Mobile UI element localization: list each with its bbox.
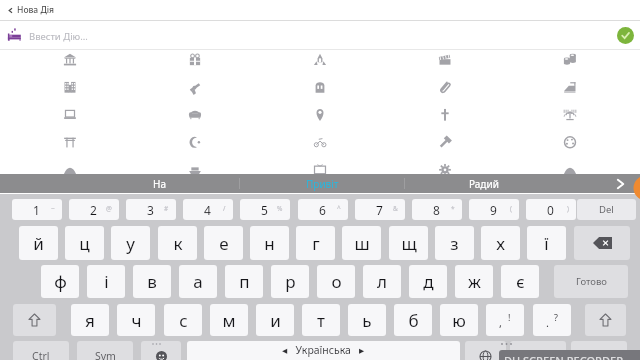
button[interactable]: . — [533, 304, 571, 336]
button[interactable]: н — [250, 226, 289, 260]
button[interactable]: 5 — [240, 199, 290, 220]
button[interactable]: п — [225, 265, 263, 298]
staticText: / — [223, 204, 226, 213]
staticText: ш — [354, 232, 370, 255]
button[interactable]: ж — [455, 265, 493, 298]
staticText: є — [516, 270, 525, 293]
button[interactable] — [571, 341, 627, 360]
staticText: ~ — [51, 204, 55, 213]
staticText: р — [285, 270, 296, 293]
staticText: в — [147, 270, 157, 293]
staticText: % — [277, 204, 283, 213]
button[interactable]: Backspace — [574, 226, 630, 260]
button[interactable]: ї — [527, 226, 566, 260]
button[interactable]: ◂ Українська ▸ — [187, 341, 460, 360]
button[interactable]: л — [363, 265, 401, 298]
button[interactable]: я — [71, 304, 109, 336]
button[interactable]: Shift — [13, 304, 56, 336]
button[interactable]: с — [164, 304, 202, 336]
staticText: 2 — [90, 202, 97, 218]
staticText: ж — [468, 270, 481, 293]
staticText: я — [85, 309, 95, 332]
button[interactable]: д — [409, 265, 447, 298]
button[interactable]: Change language — [465, 341, 506, 360]
button[interactable]: ш — [342, 226, 381, 260]
staticText: На — [153, 177, 166, 191]
staticText: н — [264, 232, 275, 255]
staticText: Del — [599, 203, 614, 216]
staticText: * — [451, 204, 455, 213]
button[interactable]: ч — [117, 304, 155, 336]
staticText: ) — [567, 204, 569, 213]
button[interactable]: Backspace — [574, 226, 630, 260]
button[interactable]: 4 — [183, 199, 233, 220]
button[interactable]: Del — [577, 199, 636, 220]
button[interactable]: б — [394, 304, 432, 336]
button[interactable]: ц — [65, 226, 104, 260]
button[interactable]: р — [271, 265, 309, 298]
button[interactable]: 1 — [12, 199, 62, 220]
button[interactable]: Emoji — [141, 341, 181, 360]
button[interactable]: м — [210, 304, 248, 336]
button[interactable]: 2 — [69, 199, 119, 220]
button[interactable]: щ — [389, 226, 428, 260]
button[interactable]: Shift — [585, 304, 626, 336]
staticText: ! — [508, 311, 511, 323]
button[interactable]: Sym — [77, 341, 133, 360]
button[interactable]: і — [87, 265, 125, 298]
button[interactable]: е — [204, 226, 243, 260]
button[interactable]: Shift — [13, 304, 56, 336]
staticText: 7 — [376, 202, 383, 218]
button[interactable]: о — [317, 265, 355, 298]
button[interactable]: з — [435, 226, 474, 260]
button[interactable]: Нова Дія — [0, 0, 640, 20]
staticText: ц — [79, 232, 90, 255]
staticText: Привіт — [306, 177, 339, 191]
button[interactable]: к — [158, 226, 197, 260]
staticText: о — [331, 270, 342, 293]
staticText: т — [317, 309, 325, 332]
button[interactable]: г — [296, 226, 335, 260]
staticText: і — [104, 270, 109, 293]
staticText: Ввести Дію... — [29, 30, 88, 43]
button[interactable]: 7 — [355, 199, 405, 220]
button[interactable]: и — [256, 304, 294, 336]
staticText: м — [222, 309, 236, 332]
button[interactable]: а — [179, 265, 217, 298]
button[interactable]: ю — [440, 304, 478, 336]
button[interactable]: є — [501, 265, 539, 298]
button[interactable]: 6 — [298, 199, 348, 220]
button[interactable]: ф — [41, 265, 79, 298]
button[interactable]: 8 — [412, 199, 462, 220]
button[interactable]: Change language — [465, 341, 506, 360]
staticText: к — [173, 232, 183, 255]
staticText: б — [408, 309, 419, 332]
staticText: Готово — [576, 275, 607, 288]
button[interactable]: й — [19, 226, 58, 260]
button[interactable]: More suggestions — [604, 174, 636, 193]
staticText: 3 — [147, 202, 154, 218]
staticText: х — [496, 232, 505, 255]
staticText: 8 — [433, 202, 440, 218]
button[interactable]: х — [481, 226, 520, 260]
button[interactable] — [510, 341, 566, 360]
button[interactable]: Готово — [554, 265, 628, 298]
staticText: . — [546, 315, 549, 330]
button[interactable]: На — [80, 174, 239, 193]
button[interactable]: Привіт — [240, 174, 404, 193]
button[interactable]: Shift — [585, 304, 626, 336]
staticText: # — [164, 204, 169, 213]
button[interactable]: т — [302, 304, 340, 336]
button[interactable]: Радий — [405, 174, 562, 193]
button[interactable]: Emoji — [141, 341, 181, 360]
button[interactable]: в — [133, 265, 171, 298]
button[interactable]: ь — [348, 304, 386, 336]
button[interactable]: 9 — [469, 199, 519, 220]
button[interactable]: , — [486, 304, 524, 336]
button[interactable]: 3 — [126, 199, 176, 220]
button[interactable]: у — [111, 226, 150, 260]
button[interactable]: 0 — [526, 199, 576, 220]
button[interactable]: Confirm — [617, 27, 634, 44]
staticText: ? — [554, 311, 558, 323]
button[interactable]: Ctrl — [13, 341, 69, 360]
